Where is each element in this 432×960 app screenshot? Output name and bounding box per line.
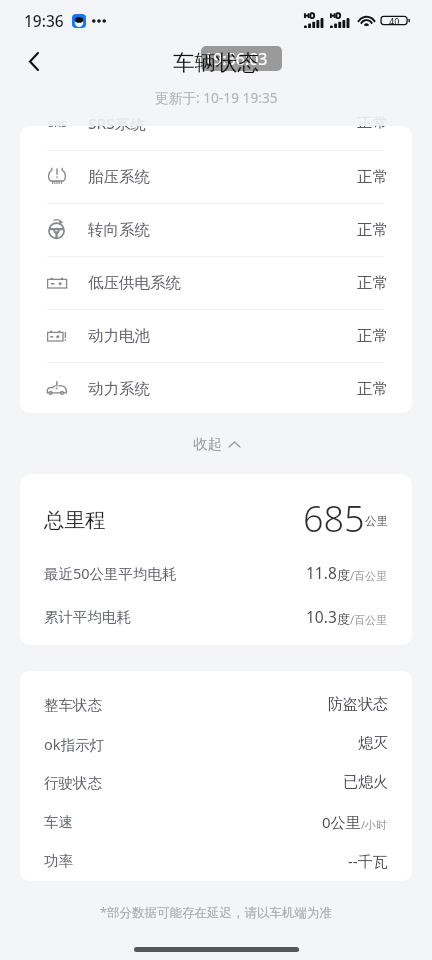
staticText: 胎压系统	[88, 167, 150, 187]
staticText: SRS系统	[88, 126, 146, 133]
staticText: 正常	[357, 220, 388, 240]
staticText: 正常	[357, 379, 388, 399]
staticText: 正常	[357, 114, 388, 134]
staticText: SRS	[48, 117, 67, 132]
staticText: 熄灭	[358, 734, 388, 753]
staticText: SRS系统	[88, 114, 146, 135]
button[interactable]: 收起	[0, 413, 432, 474]
staticText: 车辆状态	[173, 49, 259, 76]
staticText: 整车状态	[44, 696, 102, 714]
staticText: 11.8	[306, 562, 337, 583]
staticText: 正常	[357, 326, 388, 346]
staticText: 度	[337, 611, 350, 627]
staticText: 已熄火	[343, 773, 388, 792]
staticText: /百公里	[350, 612, 388, 627]
staticText: 动力系统	[88, 379, 150, 399]
button[interactable]: SRS	[20, 126, 412, 148]
staticText: 19:36:03	[204, 48, 268, 70]
staticText: 最近50公里平均电耗	[44, 563, 177, 583]
button[interactable]: 胎压系统	[20, 151, 412, 203]
button[interactable]: 动力电池	[20, 310, 412, 362]
staticText: 更新于: 10-19 19:35	[155, 88, 278, 107]
staticText: ok指示灯	[44, 734, 105, 754]
staticText: SRS	[48, 126, 67, 130]
staticText: 10.3	[306, 606, 337, 627]
staticText: 正常	[357, 126, 388, 132]
staticText: 收起	[193, 435, 222, 453]
button[interactable]: 转向系统	[20, 204, 412, 256]
staticText: 总里程	[44, 507, 106, 533]
staticText: *部分数据可能存在延迟，请以车机端为准	[100, 904, 332, 921]
staticText: 累计平均电耗	[44, 608, 131, 626]
staticText: 685	[303, 494, 365, 543]
staticText: 正常	[357, 273, 388, 293]
button[interactable]: 低压供电系统	[20, 257, 412, 309]
staticText: 公里	[365, 514, 388, 528]
staticText: 40	[389, 15, 400, 27]
staticText: 防盗状态	[328, 695, 388, 714]
staticText: 度	[337, 567, 350, 583]
button[interactable]: SRS	[20, 98, 412, 150]
staticText: 动力电池	[88, 326, 150, 346]
button[interactable]: 动力系统	[20, 363, 412, 413]
staticText: 转向系统	[88, 220, 150, 240]
staticText: --千瓦	[348, 851, 388, 871]
staticText: 19:36	[24, 10, 64, 31]
staticText: /百公里	[350, 568, 388, 583]
button[interactable]: Back	[15, 42, 53, 80]
staticText: 车速	[44, 813, 73, 831]
staticText: 低压供电系统	[88, 273, 181, 293]
staticText: /小时	[361, 817, 388, 832]
staticText: 0公里	[322, 812, 361, 832]
staticText: 行驶状态	[44, 774, 102, 792]
staticText: 功率	[44, 852, 73, 870]
staticText: 正常	[357, 167, 388, 187]
